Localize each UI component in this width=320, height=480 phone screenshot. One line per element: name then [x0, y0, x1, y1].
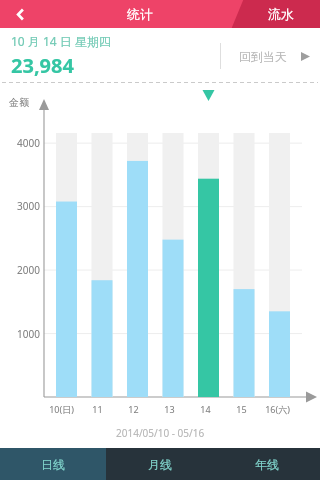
button[interactable]: 年线 [213, 448, 320, 480]
staticText: 2014/05/10 - 05/16 [116, 426, 205, 440]
staticText: 16(六) [265, 403, 290, 415]
staticText: 统计 [127, 6, 153, 22]
button[interactable]: 流水 [242, 0, 320, 28]
button[interactable]: 回到当天 [220, 38, 320, 74]
staticText: 13 [164, 403, 175, 415]
staticText: 金额 [9, 96, 29, 109]
button[interactable]: 日线 [0, 448, 106, 480]
staticText: 月线 [148, 457, 172, 472]
staticText: 10(日) [49, 403, 74, 415]
button[interactable]: Back [0, 0, 40, 28]
staticText: 1000 [17, 327, 40, 341]
staticText: 回到当天 [239, 49, 287, 64]
staticText: 11 [92, 403, 103, 415]
button[interactable]: 月线 [106, 448, 213, 480]
staticText: 10 月 14 日 星期四 [11, 33, 111, 49]
staticText: 3000 [17, 199, 40, 213]
staticText: 15 [236, 403, 247, 415]
staticText: 2000 [17, 263, 40, 277]
staticText: 12 [128, 403, 139, 415]
staticText: 14 [200, 403, 211, 415]
staticText: 23,984 [11, 52, 74, 79]
staticText: 年线 [255, 457, 279, 472]
staticText: 日线 [41, 457, 65, 472]
staticText: 流水 [268, 6, 294, 22]
staticText: 4000 [17, 136, 40, 150]
button[interactable]: 统计 [108, 0, 172, 28]
